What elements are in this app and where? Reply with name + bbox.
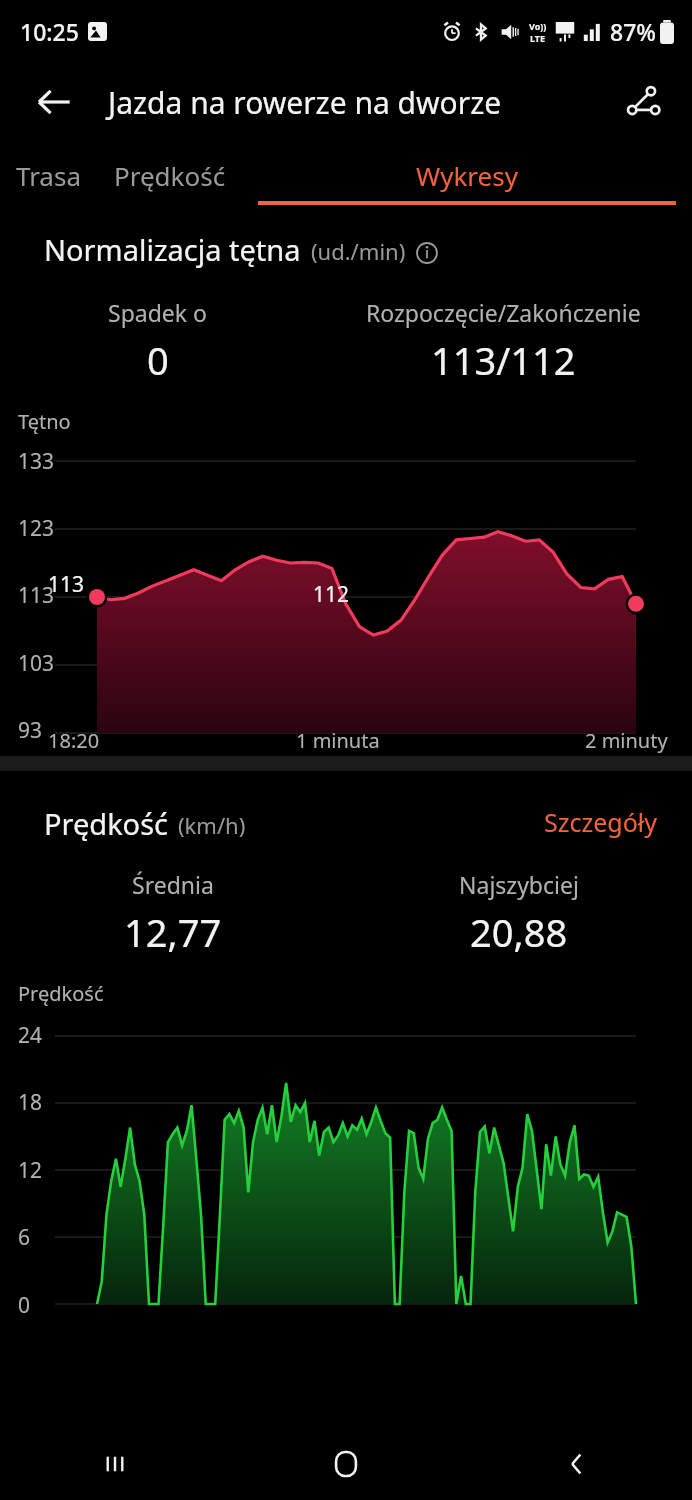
staticText: Najszybciej: [459, 869, 579, 900]
staticText: 12: [18, 1156, 43, 1185]
staticText: Spadek o: [108, 297, 207, 328]
button[interactable]: Udostępnij: [616, 75, 670, 129]
staticText: (ud./min): [311, 236, 406, 266]
staticText: Rozpoczęcie/Zakończenie: [366, 297, 641, 328]
staticText: Prędkość: [44, 804, 168, 843]
staticText: 87%: [610, 16, 656, 47]
button[interactable]: Szczegóły: [540, 801, 662, 843]
button[interactable]: Wykresy: [242, 152, 692, 211]
staticText: Prędkość: [18, 980, 104, 1007]
staticText: (km/h): [178, 810, 246, 840]
staticText: 12,77: [124, 906, 222, 958]
staticText: 18: [18, 1088, 43, 1117]
button[interactable]: Wstecz: [28, 76, 80, 128]
staticText: Średnia: [132, 869, 214, 900]
button[interactable]: Ostatnie: [0, 1428, 230, 1500]
staticText: Jazda na rowerze na dworze: [108, 82, 502, 123]
staticText: LTE: [530, 32, 546, 44]
staticText: 0: [18, 1291, 31, 1320]
staticText: 113: [18, 581, 55, 610]
button[interactable]: Trasa: [0, 152, 98, 211]
staticText: Tętno: [18, 408, 71, 435]
staticText: 133: [18, 447, 55, 476]
button[interactable]: Ekran główny: [230, 1428, 461, 1500]
staticText: Prędkość: [114, 158, 226, 193]
staticText: 6: [18, 1223, 31, 1252]
staticText: Wykresy: [416, 158, 518, 193]
staticText: 112: [313, 580, 350, 609]
button[interactable]: Prędkość: [98, 152, 242, 211]
staticText: 2 minuty: [585, 727, 668, 754]
staticText: Vo)): [529, 20, 547, 32]
staticText: 113/112: [431, 334, 576, 386]
staticText: 10:25: [20, 16, 79, 47]
staticText: 93: [18, 716, 43, 745]
staticText: 18:20: [48, 727, 100, 754]
staticText: 20,88: [470, 906, 568, 958]
staticText: Szczegóły: [544, 805, 658, 839]
staticText: 113: [48, 570, 85, 599]
staticText: 123: [18, 514, 55, 543]
button[interactable]: Wstecz: [461, 1428, 692, 1500]
staticText: 24: [18, 1021, 43, 1050]
staticText: 103: [18, 649, 55, 678]
staticText: Trasa: [16, 158, 82, 193]
staticText: 1 minuta: [296, 727, 380, 754]
staticText: 0: [147, 334, 169, 386]
staticText: Normalizacja tętna: [44, 230, 301, 269]
